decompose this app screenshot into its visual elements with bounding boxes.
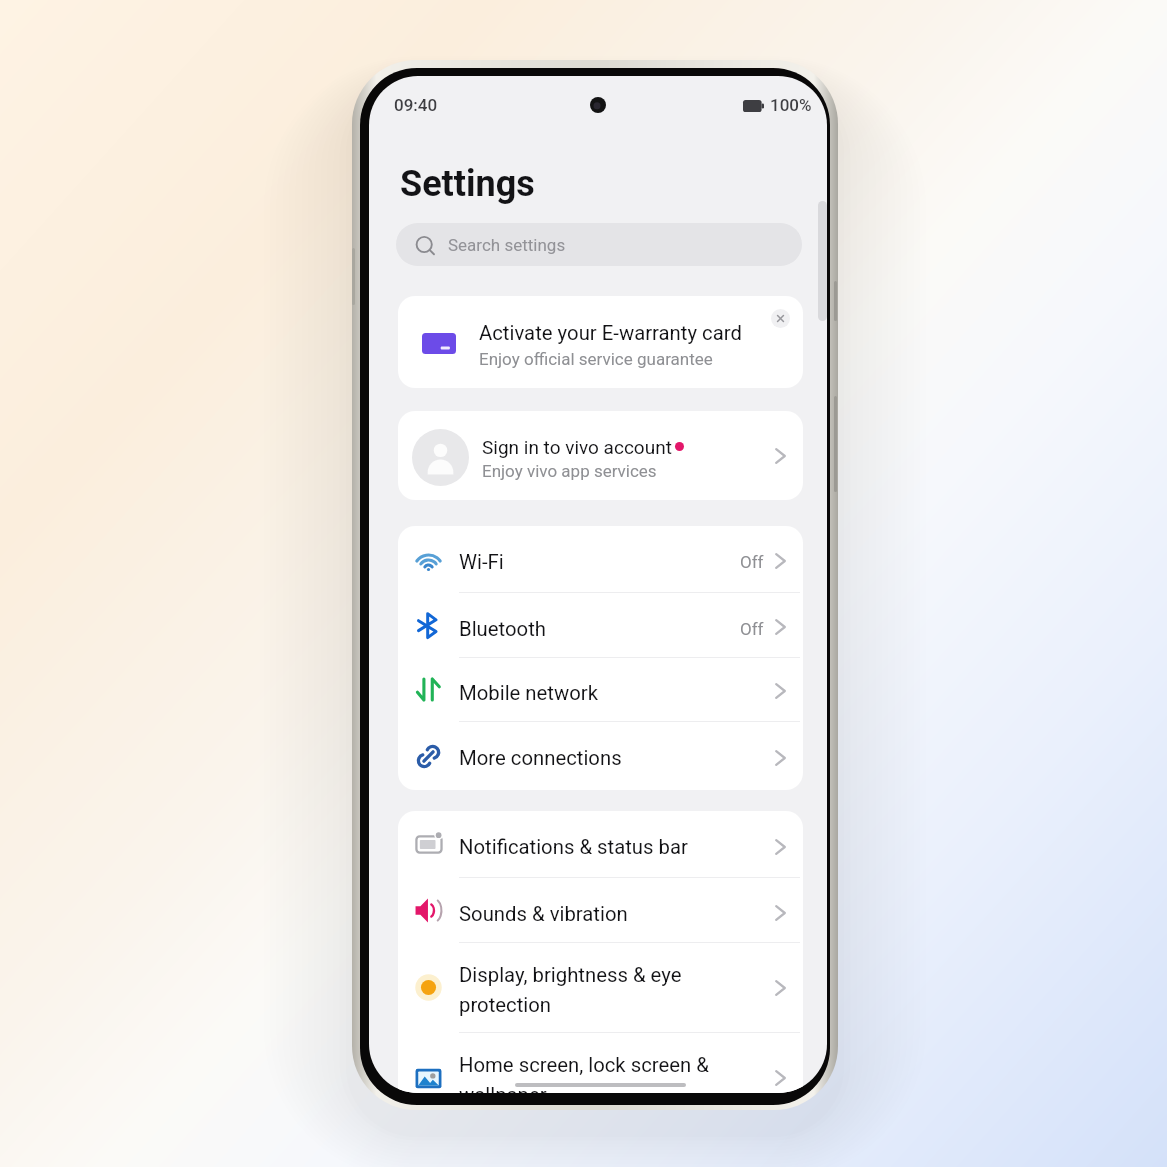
button[interactable]: Sign in to vivo account	[398, 411, 803, 500]
button[interactable]: Mobile network	[398, 657, 803, 722]
button[interactable]: Bluetooth	[398, 593, 803, 658]
staticText: Bluetooth	[459, 617, 546, 641]
staticText: Display, brightness & eye	[459, 963, 682, 987]
staticText: Sounds & vibration	[459, 902, 628, 926]
button[interactable]: More connections	[398, 722, 803, 790]
staticText: Sign in to vivo account	[482, 436, 672, 458]
staticText: Enjoy official service guarantee	[479, 349, 713, 369]
button[interactable]: Display, brightness & eye	[398, 943, 803, 1033]
button[interactable]: Home screen, lock screen &	[398, 1033, 803, 1093]
staticText: 09:40	[394, 95, 438, 115]
staticText: Off	[740, 552, 764, 572]
staticText: Search settings	[448, 235, 566, 255]
staticText: Activate your E-warranty card	[479, 321, 742, 345]
staticText: wallpaper	[459, 1083, 547, 1093]
staticText: Enjoy vivo app services	[482, 461, 657, 481]
staticText: protection	[459, 993, 552, 1017]
button[interactable]: Wi-Fi	[398, 526, 803, 593]
staticText: More connections	[459, 746, 622, 770]
staticText: Mobile network	[459, 681, 598, 705]
staticText: Off	[740, 619, 764, 639]
staticText: 100%	[770, 95, 812, 115]
button[interactable]: Sounds & vibration	[398, 878, 803, 943]
button[interactable]: Notifications & status bar	[398, 811, 803, 878]
staticText: Wi-Fi	[459, 550, 504, 574]
button[interactable]: Search settings	[396, 223, 802, 266]
button[interactable]: Dismiss	[771, 309, 790, 328]
button[interactable]: Activate your E-warranty card	[398, 296, 803, 388]
staticText: Notifications & status bar	[459, 835, 688, 859]
staticText: Settings	[400, 163, 535, 205]
staticText: Home screen, lock screen &	[459, 1053, 709, 1077]
